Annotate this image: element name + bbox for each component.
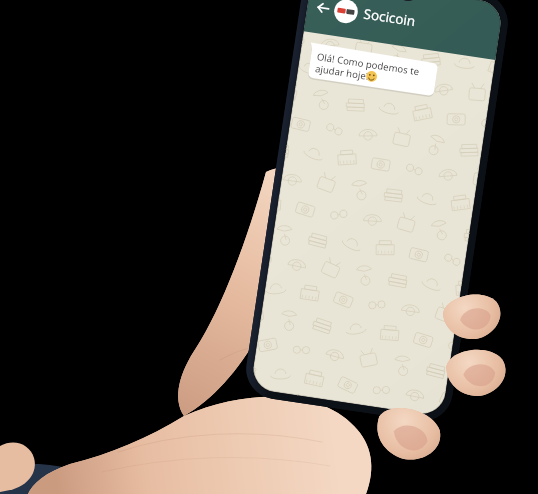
button[interactable]: Socicoin chat on phone held in hand <box>0 0 538 494</box>
